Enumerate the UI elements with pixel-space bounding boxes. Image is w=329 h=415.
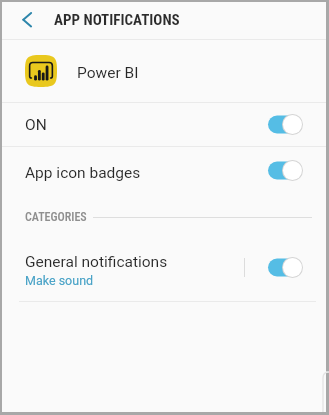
staticText: APP NOTIFICATIONS [54, 11, 180, 29]
staticText: General notifications [25, 253, 168, 271]
staticText: Make sound [25, 273, 94, 288]
staticText: ON [25, 116, 47, 134]
button[interactable]: ON [2, 103, 326, 146]
button[interactable]: Toggle on [268, 160, 303, 181]
button[interactable]: Toggle on [268, 114, 303, 135]
button[interactable]: Power BI [2, 40, 326, 102]
staticText: App icon badges [25, 164, 141, 182]
button[interactable]: Navigate up [6, 4, 40, 38]
button[interactable]: Toggle on [268, 257, 303, 278]
staticText: Power BI [77, 64, 139, 82]
staticText: CATEGORIES [25, 210, 87, 224]
button[interactable]: General notifications [2, 242, 326, 294]
button[interactable]: App icon badges [2, 147, 326, 191]
